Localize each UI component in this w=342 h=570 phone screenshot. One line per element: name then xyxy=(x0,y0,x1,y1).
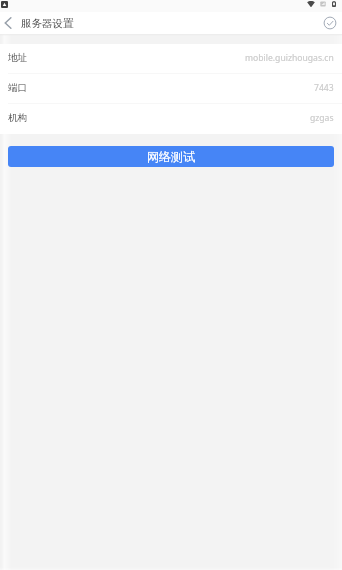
button[interactable]: Confirm xyxy=(318,12,342,34)
staticText: gzgas xyxy=(310,112,334,124)
staticText: mobile.guizhougas.cn xyxy=(245,52,334,64)
staticText: 7443 xyxy=(314,82,334,94)
button[interactable]: Back xyxy=(0,12,16,34)
button[interactable]: 机构 xyxy=(0,104,342,134)
staticText: 服务器设置 xyxy=(21,17,74,30)
staticText: 机构 xyxy=(8,112,28,124)
staticText: 网络测试 xyxy=(147,149,195,164)
button[interactable]: 端口 xyxy=(0,74,342,104)
button[interactable]: 网络测试 xyxy=(8,146,334,167)
staticText: 端口 xyxy=(8,82,28,94)
button[interactable]: 地址 xyxy=(0,44,342,74)
staticText: 地址 xyxy=(8,52,28,64)
